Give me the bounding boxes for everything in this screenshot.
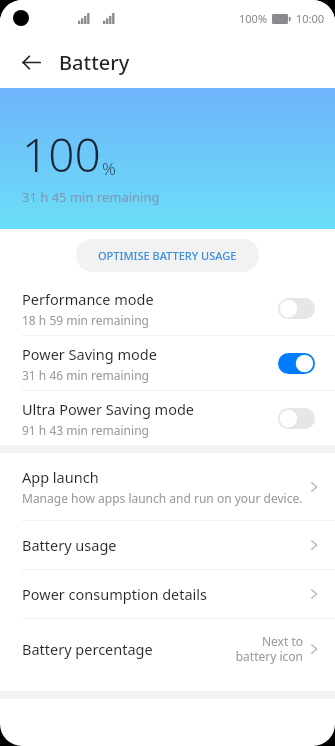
staticText: 31 h 45 min remaining xyxy=(22,188,160,206)
button[interactable]: Battery percentage xyxy=(0,619,335,678)
staticText: Battery percentage xyxy=(22,639,153,659)
staticText: 18 h 59 min remaining xyxy=(22,312,149,328)
button[interactable]: On xyxy=(278,353,315,374)
staticText: 100% xyxy=(239,11,268,26)
staticText: Power Saving mode xyxy=(22,344,157,364)
staticText: OPTIMISE BATTERY USAGE xyxy=(98,248,237,263)
button[interactable]: OPTIMISE BATTERY USAGE xyxy=(76,239,259,272)
staticText: 100 xyxy=(22,123,101,186)
button[interactable]: Power Saving mode xyxy=(0,336,335,390)
staticText: Performance mode xyxy=(22,289,154,309)
staticText: Next to battery icon xyxy=(235,633,303,664)
button[interactable]: Battery usage xyxy=(0,521,335,569)
button[interactable]: Power consumption details xyxy=(0,570,335,618)
staticText: Ultra Power Saving mode xyxy=(22,399,195,419)
button[interactable]: Back xyxy=(14,45,48,79)
button[interactable]: Off xyxy=(278,298,315,319)
staticText: Battery xyxy=(59,49,130,76)
button[interactable]: Ultra Power Saving mode xyxy=(0,391,335,445)
staticText: Manage how apps launch and run on your d… xyxy=(22,490,303,506)
staticText: 91 h 43 min remaining xyxy=(22,422,149,438)
staticText: Battery usage xyxy=(22,535,117,555)
staticText: App launch xyxy=(22,467,99,487)
staticText: 31 h 46 min remaining xyxy=(22,367,149,383)
button[interactable]: App launch xyxy=(0,453,335,520)
button[interactable]: Off xyxy=(278,408,315,429)
staticText: 10:00 xyxy=(296,11,325,26)
staticText: Power consumption details xyxy=(22,584,208,604)
button[interactable]: Performance mode xyxy=(0,281,335,335)
staticText: % xyxy=(102,157,116,180)
